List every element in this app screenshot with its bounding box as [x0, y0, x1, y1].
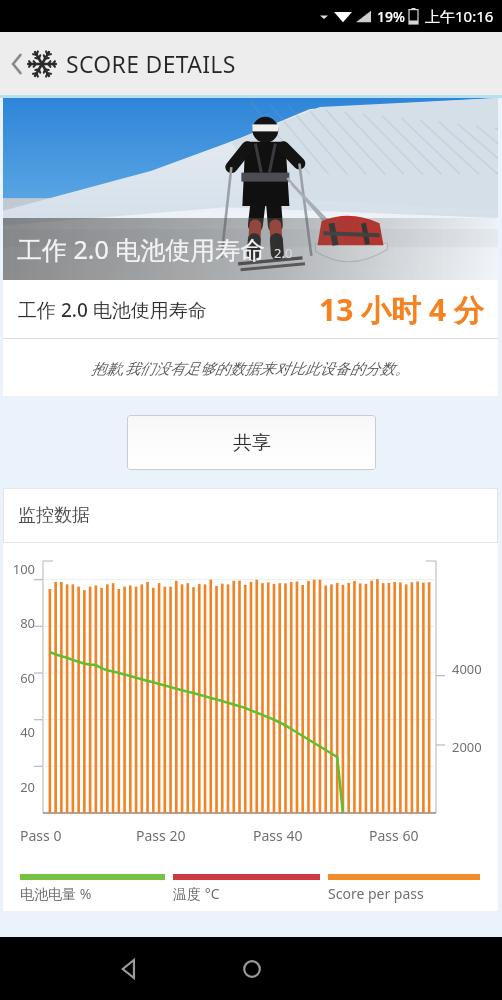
staticText: 13 小时 4 分 [319, 289, 484, 330]
staticText: 温度 °C [173, 884, 220, 903]
staticText: 共享 [233, 431, 271, 455]
staticText: 2000 [452, 738, 482, 756]
staticText: SCORE DETAILS [66, 48, 236, 79]
staticText: 40 [5, 723, 35, 741]
button[interactable]: Back [0, 32, 502, 95]
staticText: 19% [377, 7, 405, 26]
staticText: 80 [5, 614, 35, 632]
staticText: 100 [5, 560, 35, 578]
staticText: 20 [5, 778, 35, 796]
staticText: 电池电量 % [20, 884, 92, 903]
button[interactable]: 工作 2.0 电池使用寿命 [3, 280, 498, 339]
button[interactable]: 工作 2.0 电池使用寿命 [3, 98, 498, 280]
staticText: Pass 0 [20, 826, 62, 845]
staticText: Pass 40 [253, 826, 303, 845]
staticText: 监控数据 [18, 504, 90, 527]
staticText: 抱歉,我们没有足够的数据来对比此设备的分数。 [91, 358, 410, 378]
staticText: Pass 60 [369, 826, 419, 845]
staticText: Score per pass [328, 884, 424, 903]
staticText: 60 [5, 669, 35, 687]
staticText: 2.0 [274, 244, 293, 262]
staticText: Pass 20 [136, 826, 186, 845]
button[interactable]: 共享 [127, 415, 376, 470]
staticText: 上午10:16 [425, 6, 494, 26]
staticText: 工作 2.0 电池使用寿命 [17, 232, 266, 266]
button[interactable]: Back [108, 947, 152, 991]
staticText: 工作 2.0 电池使用寿命 [18, 297, 207, 323]
other: Back [10, 51, 24, 77]
button[interactable]: Home [230, 947, 274, 991]
staticText: 4000 [452, 660, 482, 678]
button[interactable]: 监控数据 [3, 488, 498, 543]
